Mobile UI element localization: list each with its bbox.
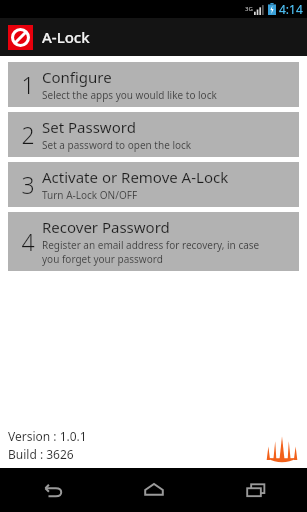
staticText: 4:14 xyxy=(279,1,303,17)
button[interactable]: Recent apps xyxy=(205,468,307,512)
staticText: Set a password to open the lock xyxy=(42,138,192,152)
staticText: Register an email address for recovery, … xyxy=(42,238,260,252)
staticText: 3G xyxy=(245,5,253,13)
staticText: Activate or Remove A-Lock xyxy=(42,167,229,187)
staticText: 1 xyxy=(21,69,35,100)
button[interactable]: 3 xyxy=(8,162,299,207)
button[interactable]: Home xyxy=(103,468,205,512)
other: A-Lock logo xyxy=(8,25,33,50)
staticText: Configure xyxy=(42,67,112,87)
staticText: Version : 1.0.1 xyxy=(8,428,87,444)
staticText: Build : 3626 xyxy=(8,446,74,462)
staticText: A-Lock xyxy=(42,27,90,47)
staticText: you forget your password xyxy=(42,252,163,266)
staticText: 4 xyxy=(21,226,35,257)
other: Company logo xyxy=(265,436,299,462)
staticText: 2 xyxy=(21,119,35,150)
button[interactable]: 4 xyxy=(8,212,299,271)
staticText: Turn A-Lock ON/OFF xyxy=(42,188,138,202)
button[interactable]: Back xyxy=(0,468,103,512)
button[interactable]: 2 xyxy=(8,112,299,157)
staticText: Recover Password xyxy=(42,217,170,237)
button[interactable]: 1 xyxy=(8,62,299,107)
staticText: 3 xyxy=(21,169,35,200)
staticText: Set Password xyxy=(42,117,136,137)
staticText: Select the apps you would like to lock xyxy=(42,88,217,102)
